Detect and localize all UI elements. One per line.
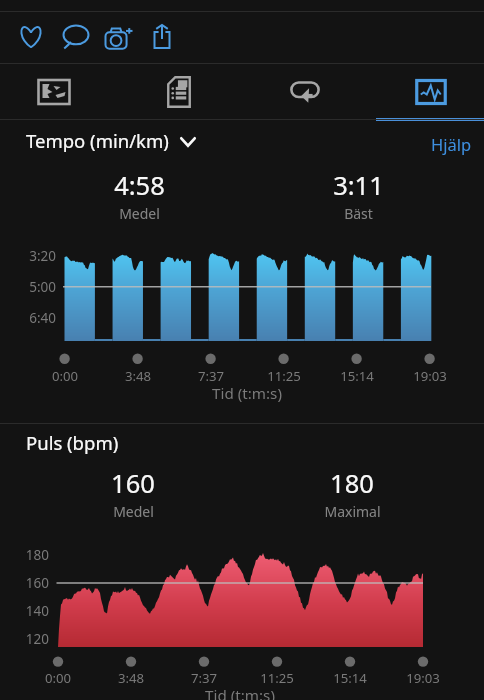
staticText: 19:03 [400, 367, 460, 385]
staticText: 7:37 [181, 367, 241, 385]
button[interactable]: Map [0, 64, 108, 119]
staticText: 3:48 [108, 367, 168, 385]
staticText: 15:14 [320, 669, 380, 687]
staticText: 4:58 [114, 168, 165, 203]
staticText: Hjälp [431, 133, 472, 155]
staticText: 160 [20, 574, 49, 592]
staticText: 11:25 [247, 669, 307, 687]
staticText: 3:48 [101, 669, 161, 687]
button[interactable]: 3:11 [288, 168, 428, 223]
button[interactable]: Like [9, 15, 53, 59]
button[interactable]: 4:58 [69, 168, 209, 223]
staticText: 180 [20, 546, 49, 564]
staticText: Bäst [344, 204, 373, 223]
staticText: 7:37 [174, 669, 234, 687]
button[interactable]: Comment [54, 15, 98, 59]
button[interactable]: Laps [251, 64, 359, 119]
button[interactable]: Add photo [97, 16, 141, 60]
staticText: Medel [119, 204, 160, 223]
staticText: Puls (bpm) [26, 430, 119, 455]
staticText: 3:20 [21, 247, 56, 265]
staticText: 15:14 [327, 367, 387, 385]
staticText: Tid (t:m:s) [5, 383, 484, 404]
staticText: 140 [20, 602, 49, 620]
button[interactable]: Hjälp [431, 133, 472, 155]
staticText: 6:40 [21, 309, 56, 327]
button[interactable]: 180 [282, 466, 422, 521]
button[interactable]: Charts [377, 64, 484, 119]
staticText: Tid (t:m:s) [0, 685, 482, 700]
staticText: 160 [111, 466, 155, 501]
button[interactable]: Puls (bpm) [26, 430, 119, 455]
staticText: 19:03 [393, 669, 453, 687]
staticText: 0:00 [35, 367, 95, 385]
staticText: 180 [330, 466, 374, 501]
staticText: Maximal [324, 502, 381, 521]
button[interactable]: Tempo (min/km) [26, 128, 196, 153]
staticText: 11:25 [254, 367, 314, 385]
staticText: Tempo (min/km) [26, 128, 169, 153]
staticText: 5:00 [21, 278, 56, 296]
button[interactable]: Summary [125, 64, 233, 119]
staticText: 0:00 [28, 669, 88, 687]
staticText: 3:11 [333, 168, 384, 203]
button[interactable]: Share [140, 14, 184, 58]
button[interactable]: 160 [63, 466, 203, 521]
staticText: 120 [20, 630, 49, 648]
staticText: Medel [113, 502, 154, 521]
